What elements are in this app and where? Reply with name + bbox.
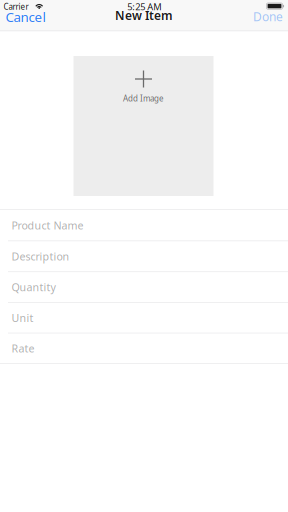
button[interactable]: Product Name bbox=[0, 210, 288, 240]
staticText: Description bbox=[11, 249, 69, 263]
staticText: Unit bbox=[11, 311, 33, 325]
staticText: Add Image bbox=[123, 93, 164, 104]
staticText: Rate bbox=[11, 341, 34, 355]
staticText: Quantity bbox=[11, 280, 55, 294]
button[interactable]: Quantity bbox=[0, 272, 288, 302]
staticText: Done bbox=[253, 9, 283, 24]
staticText: Carrier bbox=[3, 1, 28, 12]
button[interactable]: Unit bbox=[0, 303, 288, 333]
button[interactable]: Done bbox=[251, 6, 285, 27]
button[interactable]: Add Image bbox=[73, 56, 213, 196]
button[interactable]: Description bbox=[0, 241, 288, 271]
staticText: New Item bbox=[115, 7, 173, 23]
button[interactable]: Rate bbox=[0, 333, 288, 363]
staticText: Cancel bbox=[5, 8, 45, 26]
staticText: Product Name bbox=[11, 218, 83, 232]
staticText: 5:25 AM bbox=[127, 0, 161, 13]
button[interactable]: Cancel bbox=[3, 5, 47, 29]
